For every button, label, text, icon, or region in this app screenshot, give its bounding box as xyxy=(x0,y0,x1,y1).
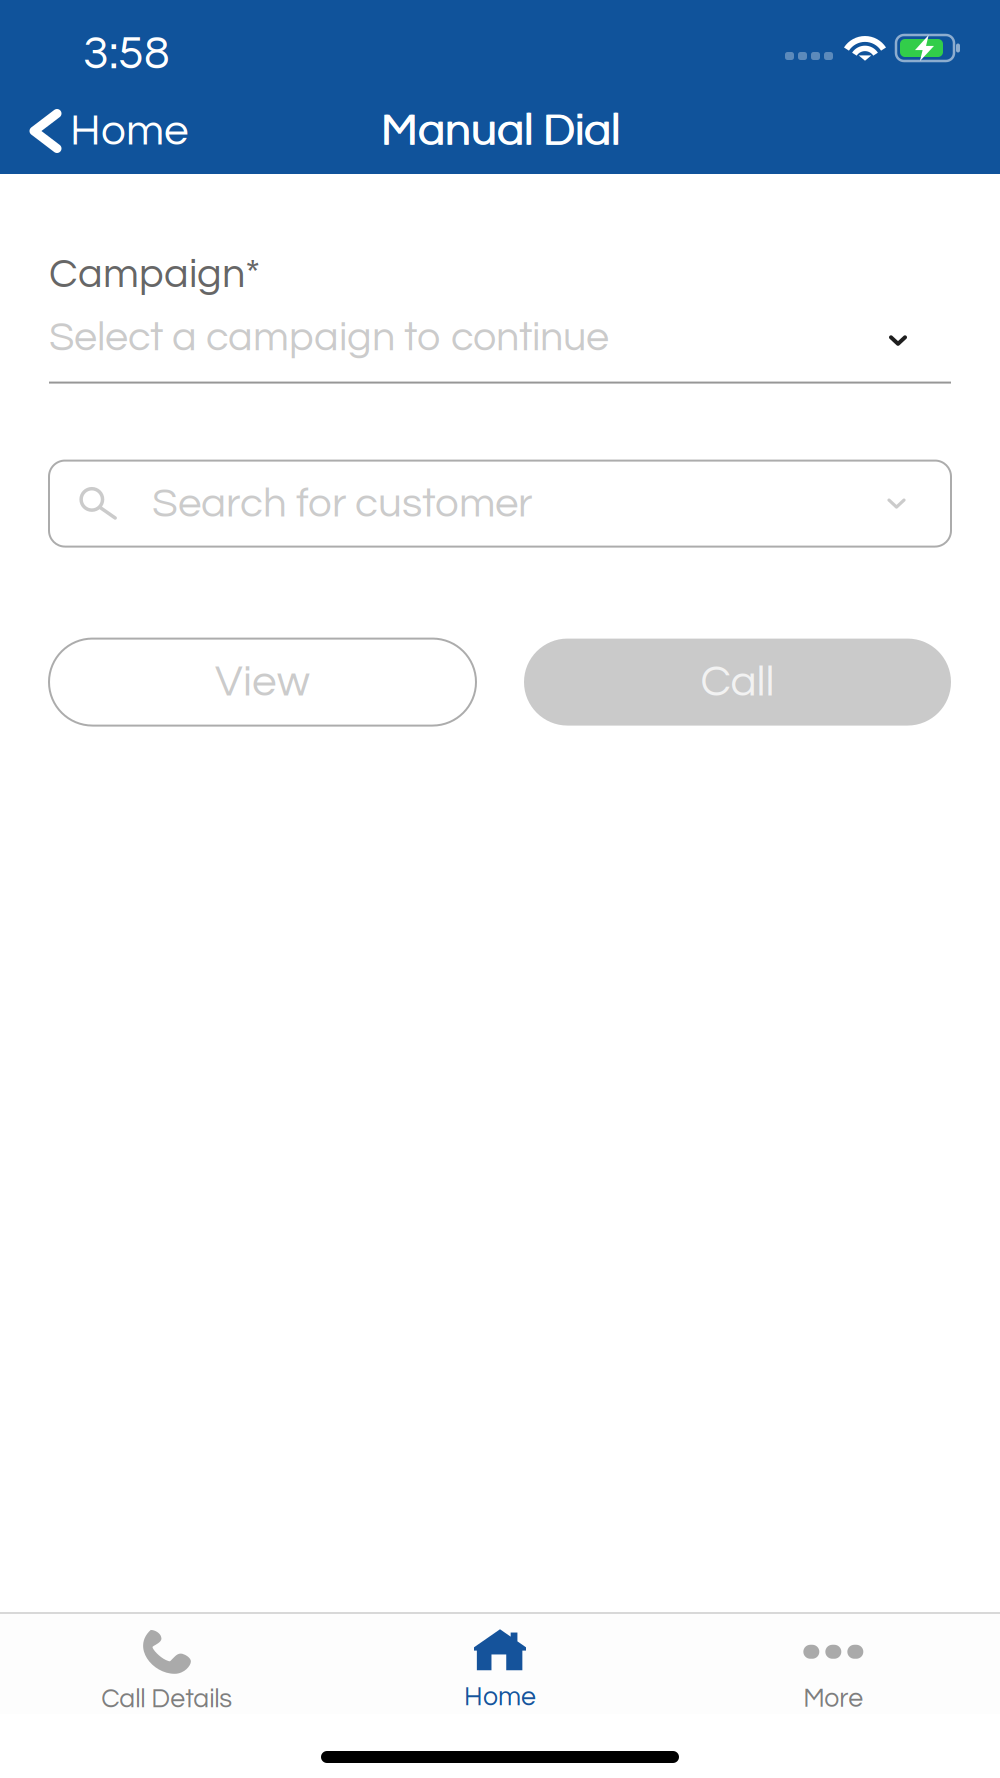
staticText: Select a campaign to continue xyxy=(49,316,609,359)
button[interactable]: View xyxy=(49,639,476,726)
staticText: View xyxy=(215,659,310,705)
button[interactable]: Home xyxy=(333,1614,667,1714)
staticText: Manual Dial xyxy=(380,108,619,154)
staticText: Search for customer xyxy=(152,482,532,525)
staticText: Manual Dial xyxy=(382,108,621,154)
button[interactable]: More xyxy=(667,1614,1000,1714)
staticText: 3:58 xyxy=(83,30,170,78)
button[interactable]: Home xyxy=(0,88,207,174)
staticText: More xyxy=(803,1685,863,1712)
staticText: Call xyxy=(700,659,774,705)
staticText: Campaign* xyxy=(49,253,260,296)
button[interactable]: Call Details xyxy=(0,1614,333,1714)
button[interactable]: Call xyxy=(524,639,951,726)
staticText: Home xyxy=(70,108,189,154)
button[interactable]: Select a campaign to continue xyxy=(49,296,951,364)
staticText: Home xyxy=(464,1683,536,1711)
button[interactable]: Search for customer xyxy=(49,461,951,547)
staticText: Call Details xyxy=(101,1685,232,1713)
